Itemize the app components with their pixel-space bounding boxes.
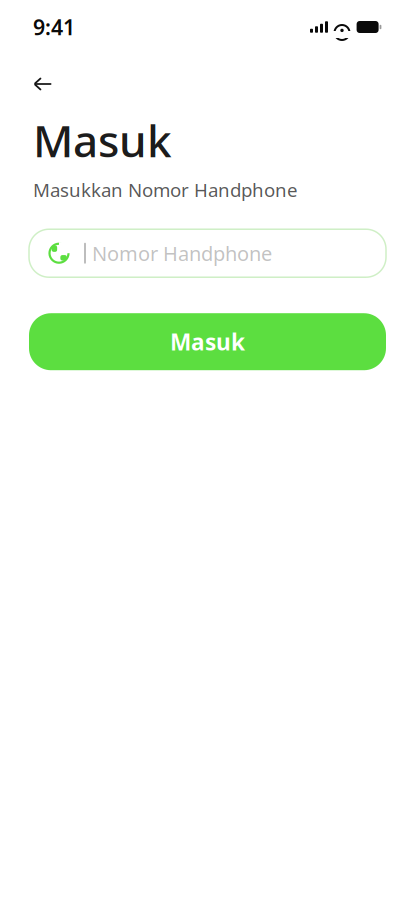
staticText: 9:41 [33,13,75,41]
button[interactable]: Masuk [29,313,386,370]
staticText: Nomor Handphone [92,240,272,266]
button[interactable]: Back [26,67,60,101]
staticText: Masukkan Nomor Handphone [33,177,298,202]
staticText: Masuk [33,111,172,169]
staticText: Masuk [170,327,245,357]
